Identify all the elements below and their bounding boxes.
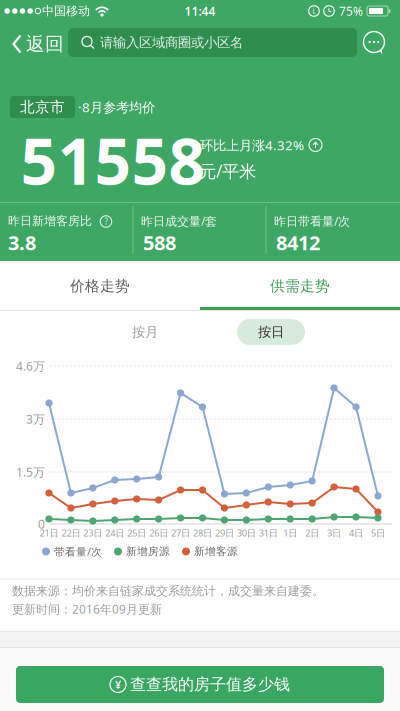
button[interactable]: 供需走势 — [200, 261, 400, 310]
staticText: 供需走势 — [270, 277, 330, 295]
button[interactable]: 返回 — [6, 28, 70, 60]
staticText: 22日 — [61, 527, 80, 539]
staticText: 数据来源：均价来自链家成交系统统计，成交量来自建委。 — [12, 584, 324, 598]
staticText: 3日 — [327, 527, 341, 539]
staticText: 昨日成交量/套 — [141, 213, 217, 229]
staticText: 23日 — [83, 527, 102, 539]
staticText: 8412 — [276, 229, 320, 256]
staticText: 588 — [143, 229, 176, 256]
staticText: 25日 — [127, 527, 146, 539]
staticText: 1日 — [283, 527, 297, 539]
staticText: 1.5万 — [16, 464, 45, 480]
staticText: 昨日带看量/次 — [274, 213, 350, 229]
staticText: 51558 — [20, 117, 205, 202]
button[interactable]: 消息 — [362, 31, 387, 56]
button[interactable]: ¥ — [16, 666, 384, 703]
staticText: 26日 — [149, 527, 168, 539]
staticText: 21日 — [39, 527, 58, 539]
staticText: 按日 — [258, 324, 284, 340]
button[interactable]: 价格走势 — [0, 261, 200, 310]
staticText: 昨日新增客房比 — [8, 214, 92, 228]
staticText: 新增房源 — [126, 545, 170, 558]
staticText: 27日 — [171, 527, 190, 539]
staticText: 11:44 — [184, 3, 215, 19]
staticText: 元/平米 — [199, 159, 256, 182]
staticText: 返回 — [26, 32, 64, 55]
staticText: 75% — [339, 3, 363, 19]
staticText: 3.8 — [8, 229, 36, 256]
button[interactable]: 按月 — [111, 319, 179, 345]
staticText: ? — [104, 216, 107, 227]
staticText: 新增客源 — [194, 545, 238, 558]
button[interactable]: 选择城市 — [10, 96, 75, 118]
staticText: 5日 — [371, 527, 385, 539]
staticText: 4.6万 — [16, 358, 45, 374]
staticText: 请输入区域商圈或小区名 — [100, 34, 243, 51]
staticText: 3万 — [26, 411, 45, 427]
staticText: 价格走势 — [70, 277, 130, 295]
button[interactable]: 搜索 — [68, 28, 357, 57]
staticText: 更新时间：2016年09月更新 — [12, 601, 162, 617]
staticText: L — [312, 7, 315, 15]
staticText: 北京市 — [20, 98, 65, 116]
staticText: 29日 — [215, 527, 234, 539]
staticText: 28日 — [193, 527, 212, 539]
staticText: ¥ — [115, 677, 121, 692]
staticText: 24日 — [105, 527, 124, 539]
staticText: 2日 — [305, 527, 319, 539]
staticText: 0 — [38, 516, 45, 532]
staticText: 按月 — [132, 324, 158, 340]
staticText: 环比上月涨4.32% — [200, 136, 304, 154]
staticText: ·8月参考均价 — [78, 98, 155, 116]
staticText: 31日 — [259, 527, 278, 539]
button[interactable]: 按日 — [237, 319, 305, 345]
staticText: 查查我的房子值多少钱 — [130, 675, 290, 694]
button[interactable]: 说明 — [99, 214, 113, 228]
staticText: 4日 — [349, 527, 363, 539]
staticText: 30日 — [237, 527, 256, 539]
staticText: 中国移动 — [42, 4, 90, 18]
staticText: 带看量/次 — [54, 544, 102, 559]
